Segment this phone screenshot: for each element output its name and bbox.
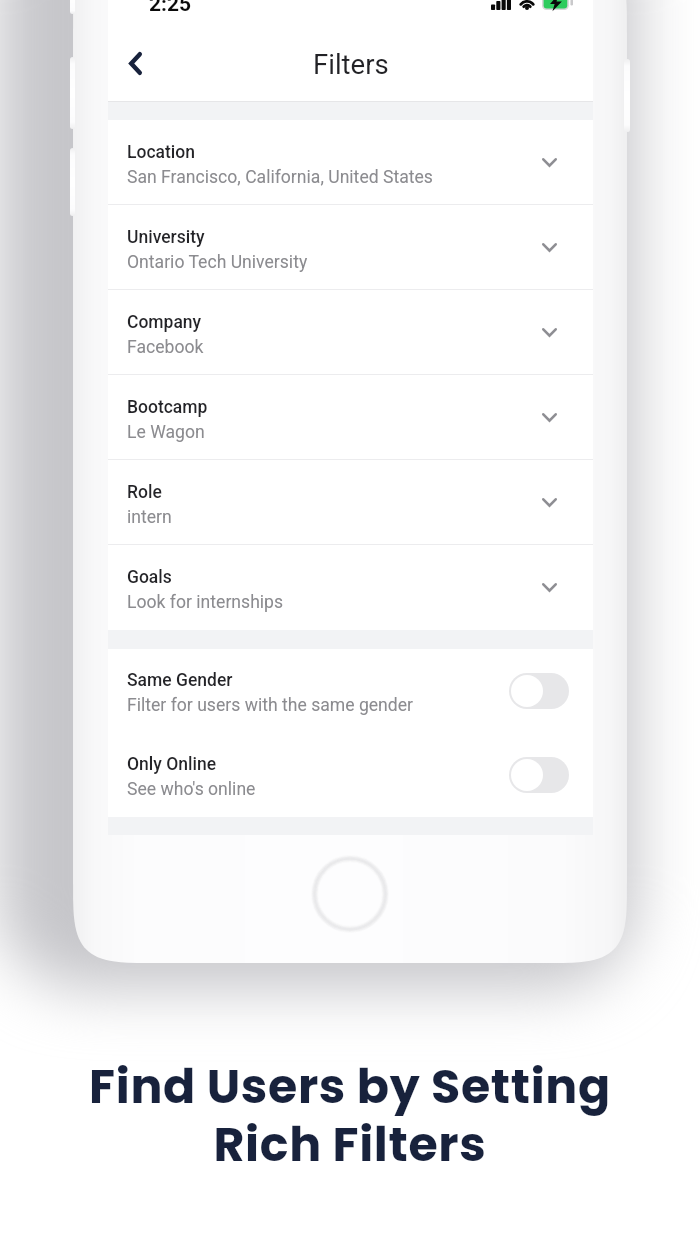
staticText: Filters xyxy=(313,48,389,80)
button[interactable]: Only Online xyxy=(108,733,593,817)
button[interactable]: University xyxy=(108,205,593,290)
staticText: Ontario Tech University xyxy=(127,252,308,273)
staticText: intern xyxy=(127,507,172,528)
button[interactable]: Company xyxy=(108,290,593,375)
staticText: Goals xyxy=(127,567,172,588)
staticText: Le Wagon xyxy=(127,422,205,443)
staticText: Same Gender xyxy=(127,670,233,691)
staticText: 2:25 xyxy=(149,0,192,17)
button[interactable]: Home xyxy=(312,856,388,932)
staticText: Role xyxy=(127,482,162,503)
button[interactable]: Goals xyxy=(108,545,593,630)
button[interactable]: Same Gender xyxy=(108,649,593,733)
staticText: San Francisco, California, United States xyxy=(127,167,433,188)
staticText: Look for internships xyxy=(127,592,284,613)
button[interactable]: Only Online toggle xyxy=(509,757,569,793)
button[interactable]: Location xyxy=(108,120,593,205)
staticText: University xyxy=(127,227,205,248)
staticText: Location xyxy=(127,142,195,163)
button[interactable]: Same Gender toggle xyxy=(509,673,569,709)
staticText: Company xyxy=(127,312,202,333)
button[interactable]: Bootcamp xyxy=(108,375,593,460)
staticText: See who's online xyxy=(127,779,256,800)
staticText: Bootcamp xyxy=(127,397,208,418)
staticText: Filter for users with the same gender xyxy=(127,695,414,716)
button[interactable]: Back xyxy=(111,39,159,87)
staticText: Find Users by Setting Rich Filters xyxy=(0,1053,700,1178)
button[interactable]: Role xyxy=(108,460,593,545)
staticText: Only Online xyxy=(127,754,217,775)
staticText: Facebook xyxy=(127,337,204,358)
